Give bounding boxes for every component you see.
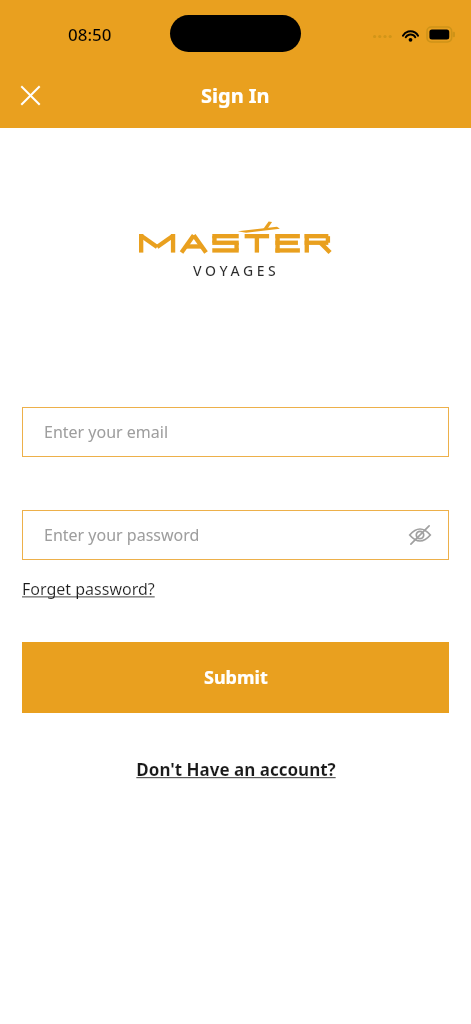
staticText: Enter your password xyxy=(44,524,200,546)
button[interactable]: Forget password? xyxy=(22,578,155,600)
button[interactable]: Enter your email xyxy=(22,407,449,457)
button[interactable]: Close xyxy=(10,75,50,115)
button[interactable]: Show password xyxy=(401,516,439,554)
button[interactable]: Enter your password xyxy=(22,510,449,560)
button[interactable]: Don't Have an account? xyxy=(136,758,336,781)
staticText: Sign In xyxy=(201,82,270,109)
staticText: Enter your email xyxy=(44,421,169,443)
staticText: VOYAGES xyxy=(193,261,280,277)
button[interactable]: Submit xyxy=(22,642,449,713)
staticText: Don't Have an account? xyxy=(136,758,336,781)
staticText: Forget password? xyxy=(22,578,155,600)
staticText: Submit xyxy=(204,665,268,690)
staticText: 08:50 xyxy=(68,23,112,46)
